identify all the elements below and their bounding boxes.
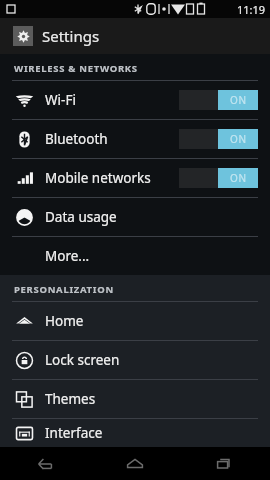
- staticText: ON: [230, 93, 247, 107]
- button[interactable]: Toggle on: [179, 129, 258, 149]
- staticText: More...: [45, 247, 90, 265]
- button[interactable]: Back: [0, 447, 90, 480]
- button[interactable]: Toggle on: [179, 168, 258, 188]
- other: Settings: [17, 30, 30, 43]
- staticText: Settings: [42, 26, 100, 46]
- staticText: Wi-Fi: [45, 91, 76, 109]
- button[interactable]: Themes: [0, 380, 270, 418]
- staticText: Bluetooth: [45, 130, 108, 148]
- button[interactable]: Data usage: [0, 198, 270, 236]
- staticText: 11:19: [237, 2, 266, 17]
- staticText: Data usage: [45, 208, 117, 226]
- staticText: Themes: [45, 390, 96, 408]
- button[interactable]: More...: [0, 237, 270, 275]
- staticText: WIRELESS & NETWORKS: [14, 62, 138, 75]
- staticText: Lock screen: [45, 351, 120, 369]
- staticText: PERSONALIZATION: [14, 283, 114, 296]
- staticText: ON: [230, 132, 247, 146]
- button[interactable]: Interface: [0, 419, 270, 447]
- button[interactable]: Home: [90, 447, 180, 480]
- button[interactable]: Home: [0, 302, 270, 340]
- button[interactable]: Recents: [180, 447, 270, 480]
- staticText: ON: [230, 171, 247, 185]
- staticText: Home: [45, 312, 84, 330]
- staticText: Interface: [45, 424, 103, 442]
- button[interactable]: Settings: [0, 18, 270, 54]
- button[interactable]: Toggle on: [179, 90, 258, 110]
- button[interactable]: Lock screen: [0, 341, 270, 379]
- staticText: Mobile networks: [45, 169, 151, 187]
- button[interactable]: Wi-Fi: [0, 81, 270, 119]
- button[interactable]: Mobile networks: [0, 159, 270, 197]
- button[interactable]: Bluetooth: [0, 120, 270, 158]
